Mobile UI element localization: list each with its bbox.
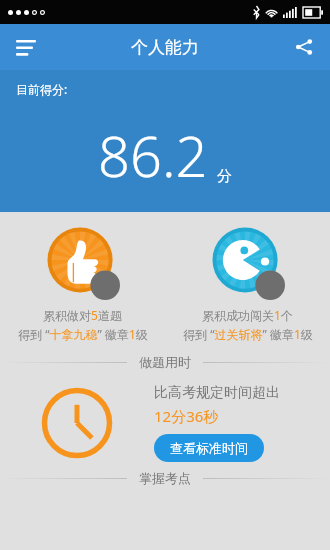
staticText: 12分36秒 <box>154 406 219 426</box>
button[interactable]: 查看标准时间 <box>154 434 264 462</box>
staticText: 86.2 <box>98 117 208 193</box>
staticText: 查看标准时间 <box>170 440 248 456</box>
staticText: 得到 “十拿九稳” 徽章1级 <box>18 326 148 342</box>
staticText: 分 <box>217 167 232 186</box>
button[interactable]: 累积做对5道题 <box>0 226 165 342</box>
staticText: 做题用时 <box>139 354 191 370</box>
staticText: 比高考规定时间超出 <box>154 384 280 402</box>
button[interactable]: Menu <box>6 27 46 67</box>
staticText: 累积做对5道题 <box>43 307 122 323</box>
staticText: 个人能力 <box>131 37 199 58</box>
button[interactable]: 累积成功闯关1个 <box>165 226 330 342</box>
staticText: 得到 “过关斩将” 徽章1级 <box>183 326 313 342</box>
staticText: 累积成功闯关1个 <box>202 307 293 323</box>
button[interactable]: Share <box>284 27 324 67</box>
staticText: 掌握考点 <box>139 470 191 486</box>
staticText: 目前得分: <box>16 81 68 97</box>
